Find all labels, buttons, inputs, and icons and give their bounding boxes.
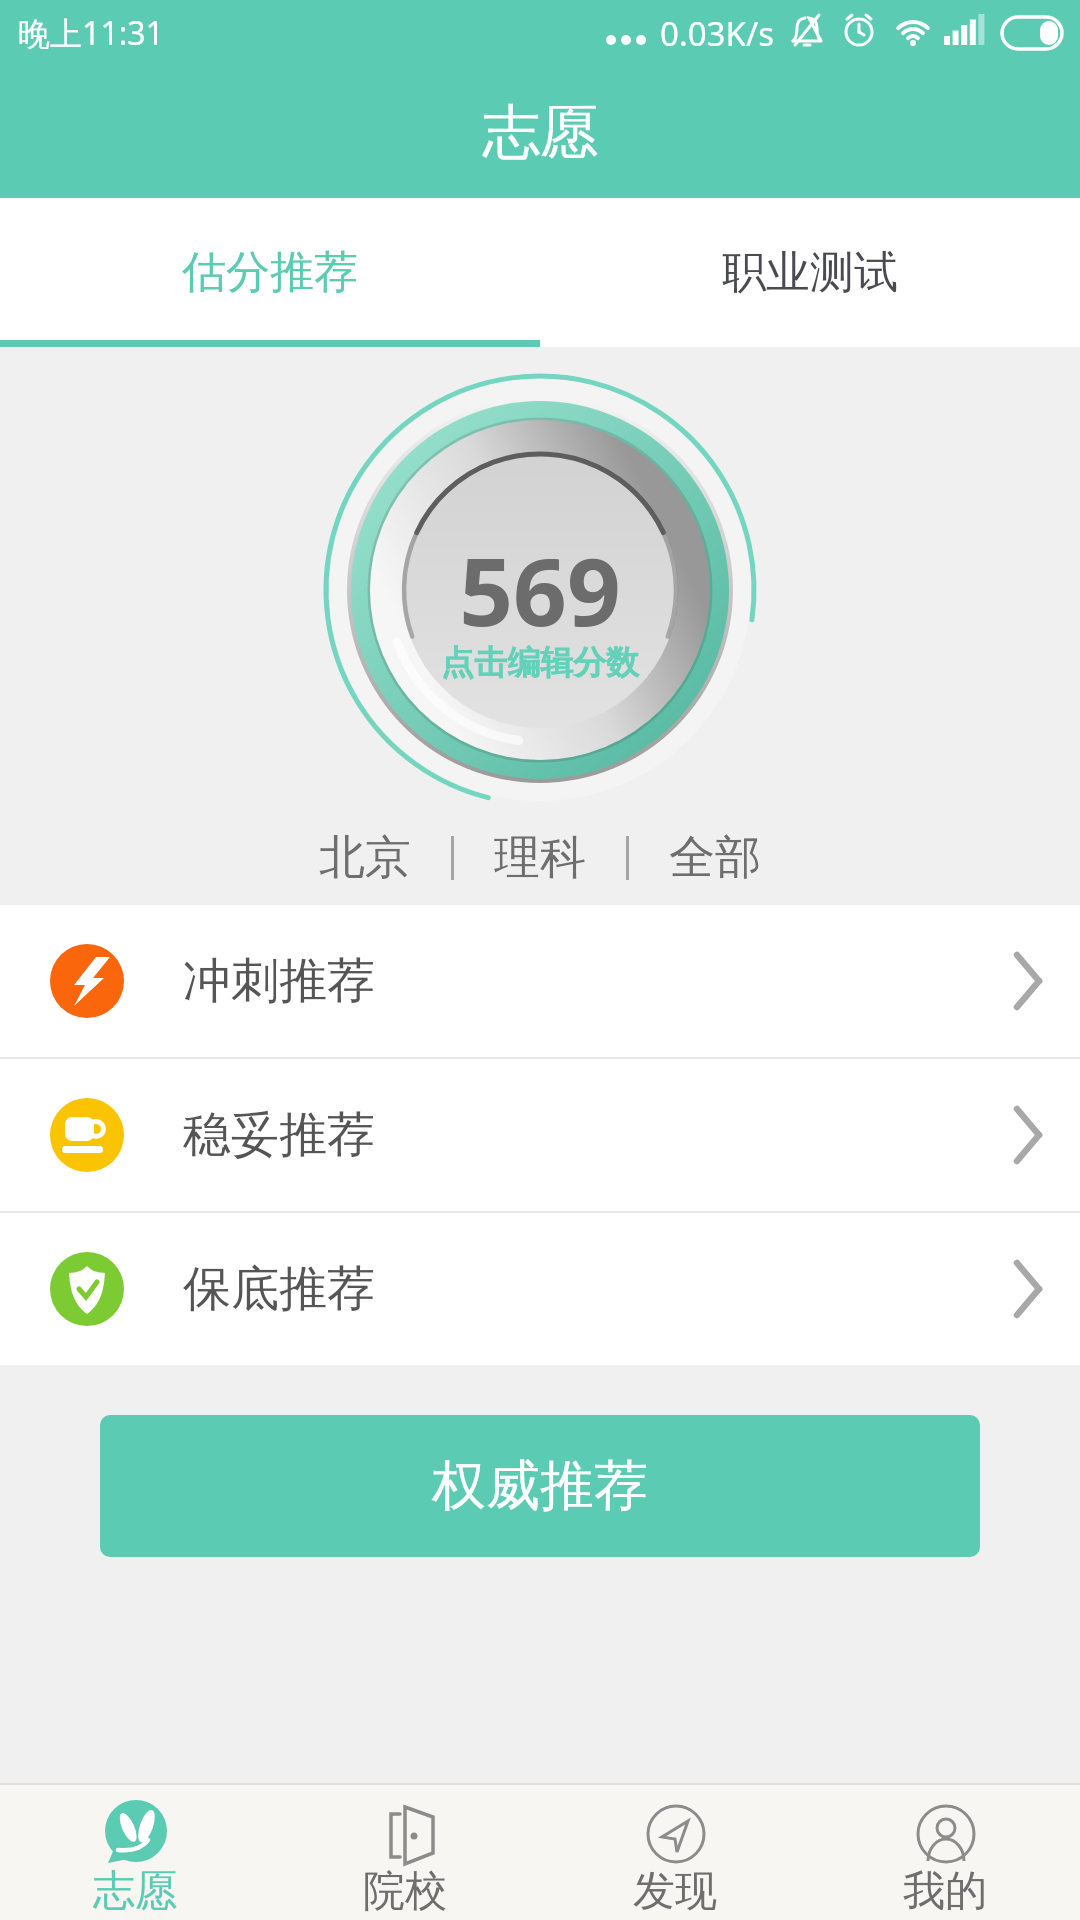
button[interactable]: 志愿	[0, 1785, 270, 1920]
button[interactable]: 冲刺推荐	[0, 905, 1080, 1057]
button[interactable]: 职业测试	[540, 198, 1080, 347]
staticText: 职业测试	[722, 245, 898, 300]
button[interactable]: 估分推荐	[0, 198, 540, 347]
staticText: 发现	[633, 1865, 717, 1918]
button[interactable]: 我的	[810, 1785, 1080, 1920]
staticText: 北京	[319, 829, 411, 887]
staticText: 志愿	[482, 96, 598, 169]
staticText: 院校	[363, 1865, 447, 1918]
button[interactable]: 569	[340, 525, 740, 655]
staticText: 冲刺推荐	[183, 951, 375, 1011]
staticText: 569	[459, 526, 621, 654]
staticText: 保底推荐	[183, 1259, 375, 1319]
staticText: 权威推荐	[432, 1452, 648, 1520]
staticText: 稳妥推荐	[183, 1105, 375, 1165]
staticText: 晚上11:31	[18, 11, 164, 55]
button[interactable]: 权威推荐	[100, 1415, 980, 1557]
staticText: 全部	[669, 829, 761, 887]
staticText: 理科	[494, 829, 586, 887]
staticText: 我的	[903, 1865, 987, 1918]
staticText: 估分推荐	[182, 245, 358, 300]
button[interactable]: 院校	[270, 1785, 540, 1920]
staticText: 0.03K/s	[660, 11, 774, 56]
button[interactable]: 稳妥推荐	[0, 1059, 1080, 1211]
button[interactable]: 发现	[540, 1785, 810, 1920]
button[interactable]: 保底推荐	[0, 1213, 1080, 1365]
staticText: 点击编辑分数	[441, 642, 639, 684]
staticText: 志愿	[93, 1865, 177, 1918]
